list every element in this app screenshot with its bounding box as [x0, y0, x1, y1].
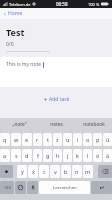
button[interactable]: h — [53, 149, 62, 162]
staticText: x — [32, 168, 35, 175]
staticText: l — [87, 152, 89, 159]
staticText: 0/0 — [6, 41, 14, 48]
staticText: Telekom.de — [9, 2, 31, 7]
staticText: Test — [6, 26, 25, 38]
button[interactable]: notes — [38, 118, 75, 131]
button[interactable]: d — [22, 149, 32, 162]
button[interactable]: t — [43, 133, 52, 146]
staticText: notes — [50, 121, 63, 128]
button[interactable]: y — [17, 165, 27, 178]
staticText: n — [75, 168, 79, 175]
button[interactable]: s — [11, 149, 21, 162]
staticText: b — [64, 168, 68, 175]
button[interactable]: n — [72, 165, 82, 178]
button[interactable]: l — [83, 149, 92, 162]
staticText: This is my note — [6, 61, 42, 68]
button[interactable]: ä — [103, 149, 112, 162]
staticText: z — [56, 136, 59, 143]
staticText: e — [25, 136, 29, 143]
button[interactable]: „note“ — [0, 118, 38, 131]
button[interactable]: i — [73, 133, 82, 146]
staticText: j — [67, 152, 69, 159]
staticText: u — [66, 136, 70, 143]
staticText: v — [54, 168, 57, 175]
button[interactable]: p — [93, 133, 102, 146]
staticText: f — [37, 152, 39, 159]
staticText: m — [85, 168, 91, 175]
button[interactable]: Return — [91, 181, 112, 194]
button[interactable]: x — [28, 165, 38, 178]
staticText: ö — [96, 152, 100, 159]
staticText: k — [76, 152, 79, 159]
button[interactable]: j — [63, 149, 72, 162]
staticText: p — [96, 136, 100, 143]
button[interactable]: Emoji — [15, 181, 26, 194]
staticText: 08:58 — [56, 1, 68, 7]
staticText: i — [77, 136, 79, 143]
button[interactable]: Home — [0, 8, 26, 19]
staticText: ä — [106, 152, 110, 159]
button[interactable]: Leerzeichen — [39, 181, 90, 194]
staticText: Leerzeichen — [53, 185, 77, 191]
staticText: y — [21, 168, 24, 175]
staticText: notebook — [83, 121, 105, 128]
button[interactable]: f — [33, 149, 42, 162]
button[interactable]: m — [83, 165, 93, 178]
staticText: h — [56, 152, 60, 159]
staticText: 100 % — [88, 2, 100, 7]
button[interactable]: notebook — [75, 118, 112, 131]
button[interactable]: c — [39, 165, 49, 178]
button[interactable]: u — [63, 133, 72, 146]
button[interactable]: 123 — [0, 181, 14, 194]
button[interactable]: g — [43, 149, 52, 162]
staticText: q — [3, 136, 7, 143]
staticText: Add task — [49, 96, 70, 103]
staticText: ü — [106, 136, 110, 143]
staticText: o — [86, 136, 90, 143]
staticText: r — [36, 136, 39, 143]
button[interactable]: ü — [103, 133, 112, 146]
button[interactable]: Voice input — [27, 181, 38, 194]
button[interactable]: Backspace — [98, 165, 112, 178]
button[interactable]: z — [53, 133, 62, 146]
staticText: t — [47, 136, 49, 143]
staticText: „note“ — [12, 121, 27, 128]
button[interactable]: b — [61, 165, 71, 178]
staticText: c — [43, 168, 46, 175]
staticText: s — [15, 152, 18, 159]
button[interactable]: Shift — [0, 165, 13, 178]
staticText: Home — [8, 10, 23, 17]
button[interactable]: a — [0, 149, 10, 162]
button[interactable]: e — [22, 133, 32, 146]
staticText: a — [3, 152, 7, 159]
button[interactable]: v — [50, 165, 60, 178]
staticText: 123 — [4, 185, 11, 190]
button[interactable]: ö — [93, 149, 102, 162]
button[interactable]: o — [83, 133, 92, 146]
button[interactable]: k — [73, 149, 82, 162]
button[interactable]: Add task — [39, 94, 74, 105]
staticText: w — [14, 136, 19, 143]
button[interactable]: w — [11, 133, 21, 146]
button[interactable]: q — [0, 133, 10, 146]
staticText: g — [46, 152, 50, 159]
button[interactable]: r — [33, 133, 42, 146]
button[interactable]: This is my note — [0, 57, 112, 87]
staticText: d — [25, 152, 29, 159]
